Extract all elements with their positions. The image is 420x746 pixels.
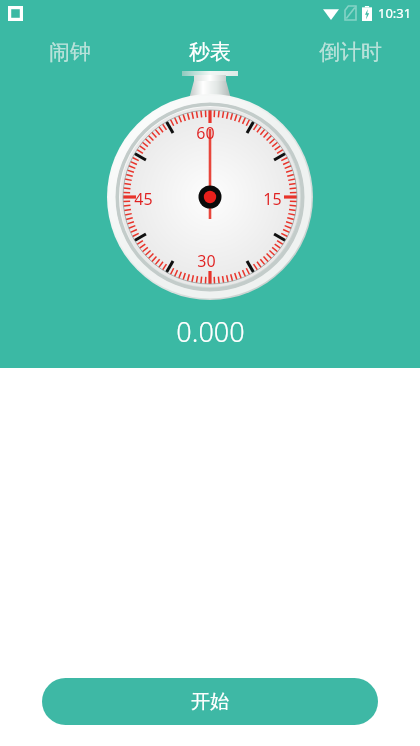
staticText: 秒表	[189, 39, 231, 65]
button[interactable]: 闹钟	[0, 26, 140, 78]
button[interactable]: 倒计时	[280, 26, 420, 78]
staticText: 15	[263, 188, 282, 210]
staticText: 60	[196, 122, 215, 144]
button[interactable]: 开始	[42, 678, 378, 725]
staticText: 倒计时	[319, 39, 382, 65]
staticText: 0.000	[176, 313, 245, 350]
staticText: 开始	[191, 690, 229, 714]
button[interactable]: 秒表	[140, 26, 280, 78]
staticText: 10:31	[378, 4, 412, 22]
staticText: 闹钟	[49, 39, 91, 65]
staticText: 30	[197, 250, 216, 272]
staticText: 45	[134, 188, 153, 210]
